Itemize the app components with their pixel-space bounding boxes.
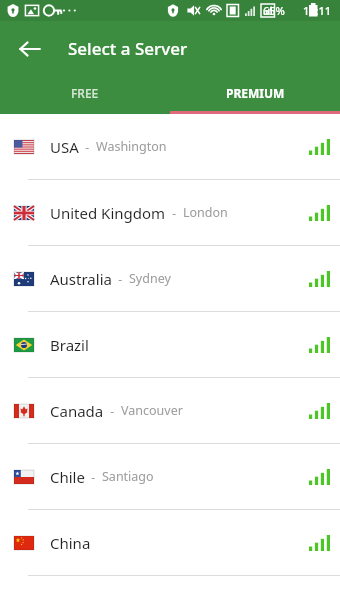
button[interactable]: USA (0, 114, 340, 180)
staticText: - (166, 205, 183, 221)
staticText: United Kingdom (50, 203, 166, 223)
staticText: Santiago (102, 468, 154, 485)
staticText: London (183, 204, 228, 221)
staticText: - (112, 271, 129, 287)
staticText: USA (50, 137, 79, 157)
button[interactable]: Australia (0, 246, 340, 312)
button[interactable]: United Kingdom (0, 180, 340, 246)
staticText: PREMIUM (226, 85, 285, 101)
button[interactable]: FREE (0, 76, 170, 114)
button[interactable]: PREMIUM (170, 76, 340, 114)
staticText: FREE (71, 85, 99, 101)
button[interactable]: Back (11, 30, 49, 68)
staticText: Washington (96, 138, 167, 155)
staticText: Select a Server (68, 37, 188, 60)
staticText: - (104, 403, 121, 419)
staticText: Australia (50, 269, 112, 289)
button[interactable]: Canada (0, 378, 340, 444)
button[interactable]: China (0, 510, 340, 576)
staticText: - (85, 469, 102, 485)
staticText: Vancouver (121, 402, 183, 419)
staticText: Chile (50, 467, 85, 487)
staticText: China (50, 533, 91, 553)
staticText: 17:11 (303, 3, 332, 18)
button[interactable]: Chile (0, 444, 340, 510)
staticText: 65% (263, 3, 285, 18)
staticText: - (79, 139, 96, 155)
staticText: Brazil (50, 335, 89, 355)
staticText: Sydney (129, 270, 171, 287)
staticText: Canada (50, 401, 104, 421)
button[interactable]: Brazil (0, 312, 340, 378)
